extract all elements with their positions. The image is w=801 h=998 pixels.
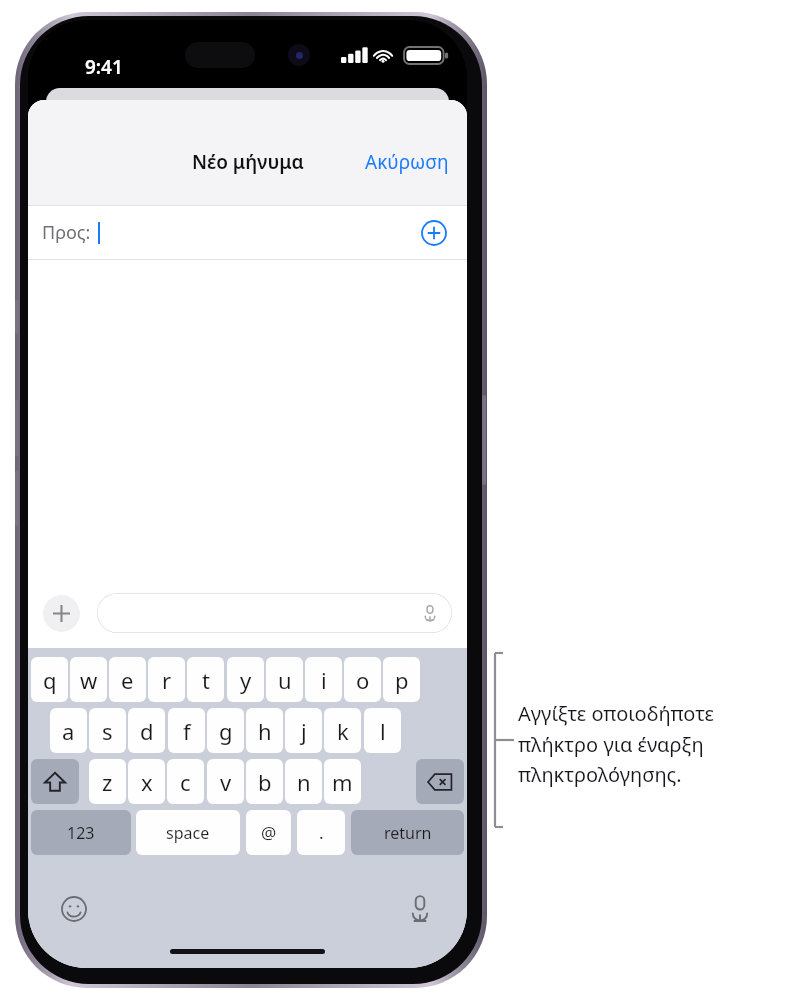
button[interactable]: g [207,708,244,753]
button[interactable]: Backspace [416,759,464,804]
staticText: x [141,767,153,797]
staticText: Προς: [42,220,91,245]
button[interactable]: Ακύρωση [347,141,467,183]
staticText: h [258,716,272,746]
staticText: y [240,665,252,695]
button[interactable]: space [136,810,240,855]
button[interactable]: j [285,708,322,753]
button[interactable]: v [207,759,244,804]
button[interactable]: Emoji [61,896,87,922]
button[interactable]: Add attachment [43,595,80,632]
button[interactable]: @ [246,810,291,855]
staticText: q [43,665,57,695]
button[interactable] [97,593,452,633]
staticText: return [384,822,432,844]
staticText: s [102,716,113,746]
button[interactable]: . [297,810,345,855]
button[interactable]: l [364,708,401,753]
button[interactable]: e [109,657,146,702]
staticText: g [219,716,233,746]
button[interactable] [31,759,79,804]
staticText: v [220,767,232,797]
button[interactable]: d [128,708,165,753]
staticText: 123 [67,822,95,844]
button[interactable]: x [128,759,165,804]
button[interactable]: p [383,657,420,702]
staticText: l [380,716,386,746]
staticText: Αγγίξτε οποιοδήποτε πλήκτρο για έναρξη π… [518,700,793,787]
staticText: w [80,665,98,695]
staticText: f [183,716,191,746]
button[interactable]: Dictation [408,895,432,923]
staticText: d [140,716,154,746]
staticText: Νέο μήνυμα [192,149,304,175]
staticText: 9:41 [85,54,123,80]
button[interactable]: t [187,657,224,702]
button[interactable]: y [227,657,264,702]
button[interactable]: m [324,759,361,804]
staticText: r [162,665,172,695]
staticText: c [180,767,191,797]
button[interactable]: return [351,810,464,855]
staticText: u [278,665,292,695]
staticText: space [166,822,210,844]
button[interactable]: n [285,759,322,804]
button[interactable]: a [50,708,87,753]
button[interactable]: r [148,657,185,702]
staticText: Ακύρωση [365,149,449,175]
button[interactable]: o [344,657,381,702]
staticText: i [321,665,327,695]
button[interactable]: Add contact [421,220,447,246]
button[interactable]: i [305,657,342,702]
button[interactable]: q [31,657,68,702]
staticText: k [337,716,349,746]
staticText: z [102,767,113,797]
button[interactable]: b [246,759,283,804]
staticText: m [332,767,353,797]
button[interactable]: z [89,759,126,804]
staticText: a [62,716,75,746]
staticText: j [301,716,307,746]
staticText: b [258,767,272,797]
button[interactable]: Προς: [28,206,467,259]
button[interactable]: u [266,657,303,702]
staticText: @ [261,821,277,844]
staticText: . [319,821,324,844]
staticText: t [202,665,210,695]
button[interactable]: k [324,708,361,753]
button[interactable]: c [167,759,204,804]
button[interactable]: h [246,708,283,753]
staticText: e [121,665,134,695]
staticText: n [297,767,311,797]
button[interactable]: w [70,657,107,702]
button[interactable]: 123 [31,810,131,855]
button[interactable]: f [168,708,205,753]
staticText: o [356,665,370,695]
button[interactable]: s [89,708,126,753]
staticText: p [395,665,409,695]
